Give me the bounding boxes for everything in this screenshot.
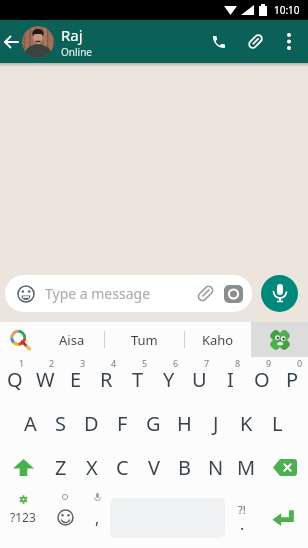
button[interactable]: Y [153,357,184,401]
staticText: A [24,410,37,437]
staticText: O [254,366,270,393]
button[interactable] [261,275,298,312]
staticText: 0 [297,357,303,369]
staticText: Tum [131,331,158,349]
staticText: M [237,454,256,481]
button[interactable]: Kaho [185,322,251,357]
button[interactable] [0,322,40,357]
button[interactable]: Raj [61,25,92,59]
staticText: K [240,410,253,437]
staticText: 6 [173,357,179,369]
staticText: H [177,410,192,437]
staticText: Z [55,454,67,481]
button[interactable] [270,20,308,63]
staticText: Y [163,366,175,393]
staticText: F [117,410,128,437]
button[interactable]: W [30,357,60,401]
button[interactable]: P [277,357,308,401]
button[interactable] [0,445,46,489]
staticText: Type a message [45,284,151,303]
staticText: P [286,366,299,393]
staticText: Kaho [202,331,234,349]
staticText: 1 [19,357,25,369]
staticText: V [148,454,160,481]
button[interactable]: Z [46,445,76,489]
staticText: 9 [266,357,272,369]
staticText: Online [61,45,92,59]
button[interactable]: E [60,357,91,401]
button[interactable]: S [45,401,76,445]
button[interactable]: , [84,489,110,548]
button[interactable] [262,445,308,489]
staticText: . [240,513,245,535]
button[interactable]: X [76,445,107,489]
button[interactable] [46,489,84,548]
staticText: ?123 [10,509,36,525]
staticText: 4 [111,357,117,369]
staticText: 8 [235,357,241,369]
button[interactable]: M [231,445,262,489]
button[interactable]: ?! [225,489,259,548]
button[interactable]: Type a message [5,275,252,312]
button[interactable]: Q [0,357,30,401]
staticText: X [86,454,98,481]
staticText: Aisa [59,331,85,349]
staticText: G [146,410,161,437]
button[interactable]: ?123 [0,489,46,548]
staticText: R [100,366,113,393]
button[interactable]: T [122,357,153,401]
staticText: I [227,366,234,393]
button[interactable]: A [15,401,45,445]
button[interactable] [202,20,236,63]
staticText: 5 [142,357,148,369]
button[interactable] [240,20,270,63]
button[interactable] [0,20,22,63]
button[interactable]: Tum [105,322,184,357]
staticText: , [95,507,100,529]
button[interactable]: O [246,357,277,401]
button[interactable] [251,322,308,357]
staticText: D [84,410,99,437]
button[interactable]: L [262,401,293,445]
staticText: L [272,410,283,437]
staticText: T [132,366,144,393]
button[interactable]: V [138,445,169,489]
staticText: ?! [238,502,246,517]
staticText: 10:10 [274,3,300,17]
staticText: W [36,366,55,393]
button[interactable]: D [76,401,107,445]
button[interactable]: J [200,401,231,445]
staticText: Q [7,366,23,393]
staticText: E [70,366,82,393]
staticText: N [208,454,224,481]
button[interactable]: C [107,445,138,489]
button[interactable]: H [169,401,200,445]
staticText: B [178,454,191,481]
button[interactable]: N [200,445,231,489]
button[interactable]: F [107,401,138,445]
button[interactable] [259,489,308,548]
button[interactable]: U [184,357,215,401]
staticText: 2 [49,357,55,369]
button[interactable]: Aisa [40,322,104,357]
staticText: Raj [61,25,83,45]
staticText: S [55,410,66,437]
staticText: 3 [80,357,86,369]
button[interactable] [22,26,54,58]
button[interactable]: I [215,357,246,401]
button[interactable]: B [169,445,200,489]
staticText: 7 [204,357,210,369]
button[interactable]: G [138,401,169,445]
staticText: U [192,366,207,393]
staticText: C [116,454,129,481]
staticText: J [213,410,219,437]
button[interactable]: K [231,401,262,445]
button[interactable]: R [91,357,122,401]
